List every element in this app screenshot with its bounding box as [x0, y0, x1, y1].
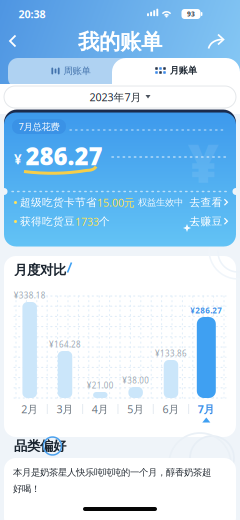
staticText: 我的账单 — [78, 29, 162, 55]
staticText: 去赚豆 — [189, 215, 222, 228]
button[interactable]: 2023年7月 — [4, 86, 236, 108]
staticText: 获得吃货豆 — [20, 215, 75, 228]
staticText: 3月 — [56, 402, 73, 416]
button[interactable] — [10, 35, 18, 48]
staticText: 15.00元 — [97, 195, 135, 210]
staticText: 7月 — [198, 402, 215, 416]
staticText: ¥338.18 — [14, 290, 46, 301]
staticText: 权益生效中 — [135, 197, 183, 208]
staticText: 超级吃货卡节省 — [20, 196, 97, 209]
staticText: ¥164.28 — [49, 339, 81, 350]
staticText: 5月 — [127, 402, 144, 416]
button[interactable]: 获得吃货豆 — [12, 215, 230, 227]
staticText: 周账单 — [64, 65, 91, 77]
button[interactable]: 月账单 — [155, 65, 197, 76]
staticText: 好喝！ — [13, 483, 40, 495]
staticText: ¥ — [14, 150, 22, 168]
staticText: ¥ — [187, 127, 218, 197]
button[interactable] — [207, 34, 225, 50]
staticText: 6月 — [162, 402, 179, 416]
staticText: 品类偏好 — [14, 438, 66, 454]
staticText: 7月总花费 — [18, 120, 59, 133]
staticText: 1733 — [75, 214, 99, 229]
staticText: 月度对比 — [14, 262, 66, 278]
staticText: 去查看 — [189, 196, 222, 209]
staticText: 20:38 — [18, 7, 45, 21]
staticText: ¥286.27 — [190, 305, 222, 316]
staticText: 286.27 — [25, 140, 102, 172]
staticText: 本月是奶茶星人快乐吨吨吨的一个月，醇香奶茶超 — [13, 467, 211, 478]
staticText: ¥21.00 — [87, 380, 114, 391]
staticText: 月账单 — [170, 65, 197, 76]
staticText: 2月 — [21, 402, 38, 416]
staticText: 93 — [187, 10, 195, 18]
staticText: ¥133.86 — [155, 348, 187, 359]
staticText: 4月 — [92, 402, 109, 416]
staticText: 个 — [99, 215, 110, 228]
staticText: 2023年7月 — [89, 90, 141, 104]
button[interactable]: 超级吃货卡节省 — [12, 196, 230, 208]
button[interactable]: 周账单 — [8, 58, 134, 88]
staticText: ¥38.00 — [122, 375, 149, 386]
